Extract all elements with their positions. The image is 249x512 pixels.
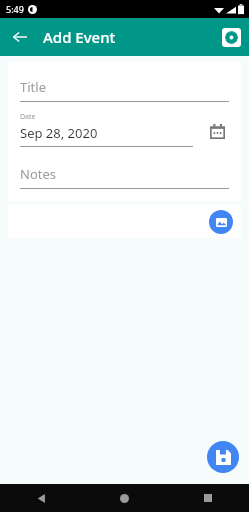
button[interactable]: Home	[83, 484, 166, 512]
button[interactable]: Pick date	[205, 119, 229, 143]
button[interactable]: Title	[20, 78, 229, 102]
staticText: Add Event	[43, 27, 116, 47]
button[interactable]: Save	[207, 441, 239, 473]
staticText: 5:49	[6, 3, 24, 15]
button[interactable]: Notes	[20, 165, 229, 189]
button[interactable]: Back	[0, 484, 83, 512]
staticText: Notes	[20, 165, 56, 183]
staticText: Title	[20, 78, 46, 96]
button[interactable]: Settings	[219, 25, 243, 49]
button[interactable]: Add image	[209, 210, 233, 234]
button[interactable]: Recent apps	[166, 484, 249, 512]
staticText: Sep 28, 2020	[20, 124, 98, 142]
staticText: Date	[20, 112, 36, 122]
button[interactable]: Date	[20, 112, 193, 147]
button[interactable]: Back	[4, 21, 36, 53]
